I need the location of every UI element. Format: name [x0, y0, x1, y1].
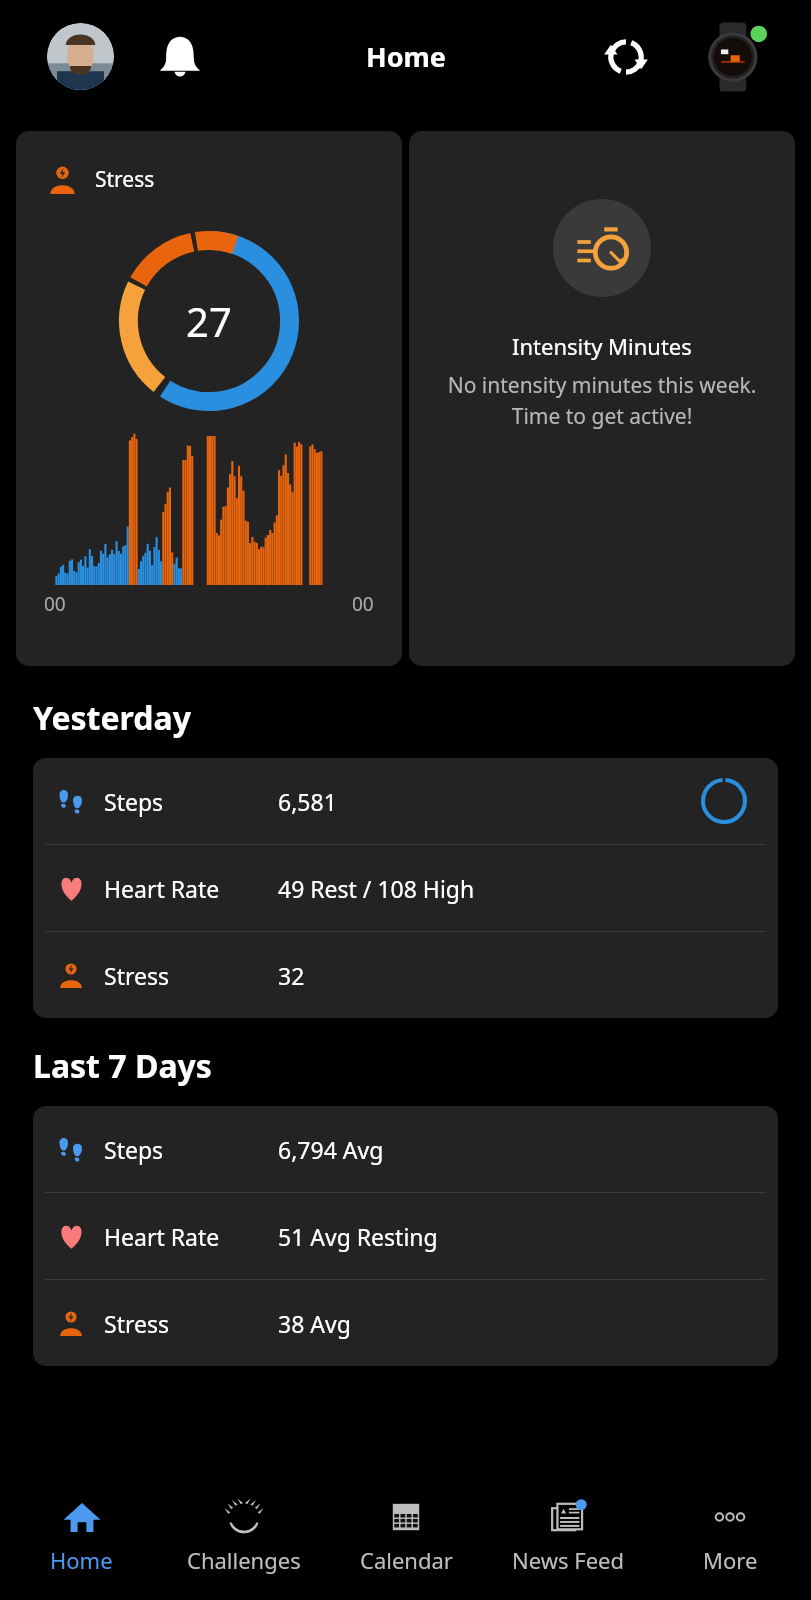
button[interactable]: Challenges — [163, 1478, 325, 1600]
staticText: 38 Avg — [278, 1308, 351, 1339]
staticText: Stress — [104, 960, 266, 991]
staticText: Calendar — [360, 1545, 453, 1575]
staticText: Last 7 Days — [33, 1044, 212, 1088]
staticText: Stress — [104, 1308, 266, 1339]
staticText: 51 Avg Resting — [278, 1221, 438, 1252]
staticText: 49 Rest / 108 High — [278, 873, 475, 904]
button[interactable]: Heart Rate — [33, 1193, 778, 1279]
staticText: News Feed — [512, 1545, 625, 1575]
button[interactable]: Device — [699, 21, 771, 93]
button[interactable]: More — [649, 1478, 811, 1600]
staticText: 00 — [44, 591, 66, 617]
button[interactable]: Notifications — [145, 22, 215, 92]
button[interactable]: Home — [0, 1478, 163, 1600]
button[interactable]: Stress — [16, 131, 402, 666]
staticText: Home — [50, 1545, 113, 1575]
staticText: 00 — [352, 591, 374, 617]
button[interactable]: Sync — [591, 22, 661, 92]
staticText: Heart Rate — [104, 873, 266, 904]
staticText: Heart Rate — [104, 1221, 266, 1252]
staticText: 6,794 Avg — [278, 1134, 384, 1165]
staticText: Stress — [95, 165, 155, 194]
staticText: No intensity minutes this week. Time to … — [427, 371, 777, 430]
button[interactable]: Steps — [33, 758, 778, 844]
staticText: 6,581 — [278, 786, 337, 817]
button[interactable]: Intensity Minutes — [409, 131, 795, 666]
button[interactable]: Calendar — [325, 1478, 487, 1600]
staticText: Challenges — [187, 1545, 301, 1575]
staticText: Home — [366, 38, 446, 75]
button[interactable]: Stress — [33, 1280, 778, 1366]
button[interactable]: News Feed — [487, 1478, 649, 1600]
staticText: 32 — [278, 960, 305, 991]
staticText: More — [703, 1545, 758, 1575]
button[interactable]: Stress — [33, 932, 778, 1018]
staticText: 27 — [186, 294, 232, 348]
staticText: Steps — [104, 786, 266, 817]
staticText: Yesterday — [33, 696, 191, 740]
button[interactable]: Profile — [47, 23, 114, 90]
staticText: Intensity Minutes — [512, 331, 692, 361]
staticText: Steps — [104, 1134, 266, 1165]
button[interactable]: Heart Rate — [33, 845, 778, 931]
button[interactable]: Steps — [33, 1106, 778, 1192]
